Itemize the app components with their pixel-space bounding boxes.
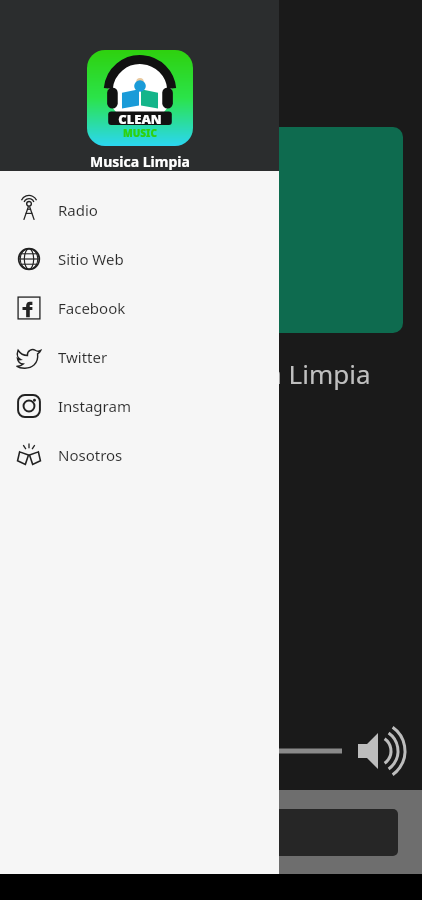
- staticText: CLEAN: [118, 110, 162, 128]
- button[interactable]: INFORMACIÓN: [24, 809, 398, 856]
- staticText: Nosotros: [58, 445, 123, 465]
- button[interactable]: Nosotros: [0, 430, 279, 479]
- staticText: Sitio Web: [58, 249, 124, 269]
- button[interactable]: Twitter: [0, 332, 279, 381]
- staticText: Instagram: [58, 396, 131, 416]
- button[interactable]: Radio: [0, 185, 279, 234]
- other: Clean Music logo: [87, 50, 193, 146]
- staticText: Radio Musica Limpia Online Gratis: [120, 356, 422, 426]
- button[interactable]: Facebook: [0, 283, 279, 332]
- button[interactable]: Sitio Web: [0, 234, 279, 283]
- button[interactable]: Clean Music logo: [0, 0, 279, 171]
- staticText: Musica Limpia: [90, 152, 190, 171]
- staticText: Radio: [58, 200, 98, 220]
- button[interactable]: Instagram: [0, 381, 279, 430]
- staticText: MUSIC: [123, 126, 157, 140]
- staticText: Facebook: [58, 298, 126, 318]
- staticText: Twitter: [58, 347, 108, 367]
